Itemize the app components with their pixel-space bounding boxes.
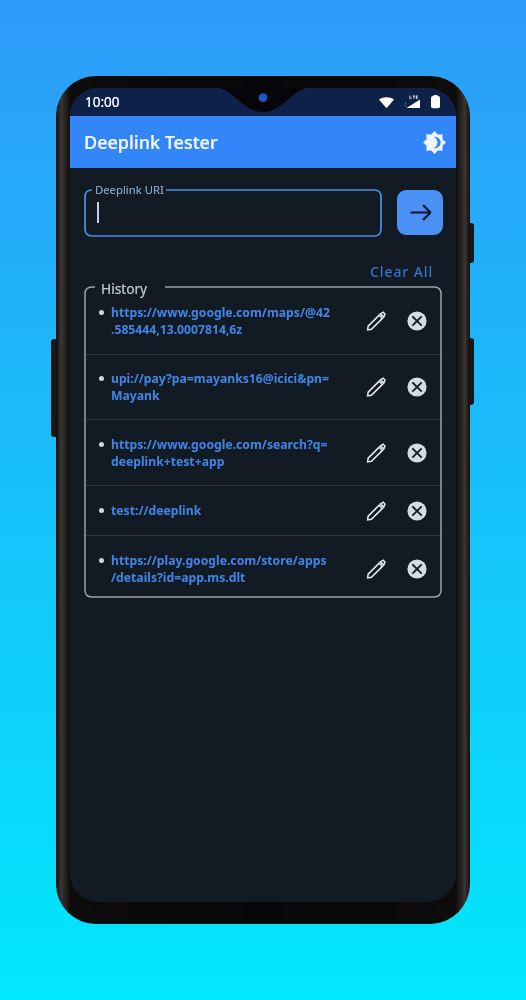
staticText: 10:00 — [85, 93, 120, 111]
button[interactable]: Delete — [401, 553, 433, 585]
button[interactable]: Edit — [359, 436, 393, 470]
staticText: .585444,13.0007814,6z — [111, 321, 243, 338]
button[interactable]: https://play.google.com/store/apps — [85, 536, 441, 601]
staticText: Deeplink URI — [95, 182, 164, 197]
staticText: https://play.google.com/store/apps — [111, 552, 327, 569]
button[interactable]: Delete — [401, 437, 433, 469]
button[interactable]: Delete — [401, 305, 433, 337]
button[interactable]: upi://pay?pa=mayanks16@icici&pn= — [85, 355, 441, 419]
button[interactable]: Open deeplink — [397, 190, 443, 235]
staticText: upi://pay?pa=mayanks16@icici&pn= — [111, 370, 329, 387]
button[interactable]: Edit — [359, 370, 393, 404]
staticText: /details?id=app.ms.dlt — [111, 569, 246, 586]
staticText: Mayank — [111, 387, 160, 404]
button[interactable]: Edit — [359, 552, 393, 586]
button[interactable]: test://deeplink — [85, 486, 441, 535]
button[interactable]: Edit — [359, 304, 393, 338]
button[interactable]: Toggle theme — [415, 123, 453, 161]
staticText: History — [101, 279, 148, 298]
staticText: deeplink+test+app — [111, 453, 225, 470]
staticText: https://www.google.com/maps/@42 — [111, 304, 330, 321]
button[interactable]: Clear All — [366, 259, 438, 284]
button[interactable]: Edit — [359, 494, 393, 528]
staticText: https://www.google.com/search?q= — [111, 436, 328, 453]
button[interactable]: https://www.google.com/search?q= — [85, 420, 441, 485]
staticText: test://deeplink — [111, 502, 202, 519]
staticText: Clear All — [370, 262, 434, 281]
button[interactable]: Delete — [401, 495, 433, 527]
button[interactable]: https://www.google.com/maps/@42 — [85, 287, 441, 354]
staticText: Deeplink Tester — [84, 130, 218, 155]
button[interactable]: Delete — [401, 371, 433, 403]
